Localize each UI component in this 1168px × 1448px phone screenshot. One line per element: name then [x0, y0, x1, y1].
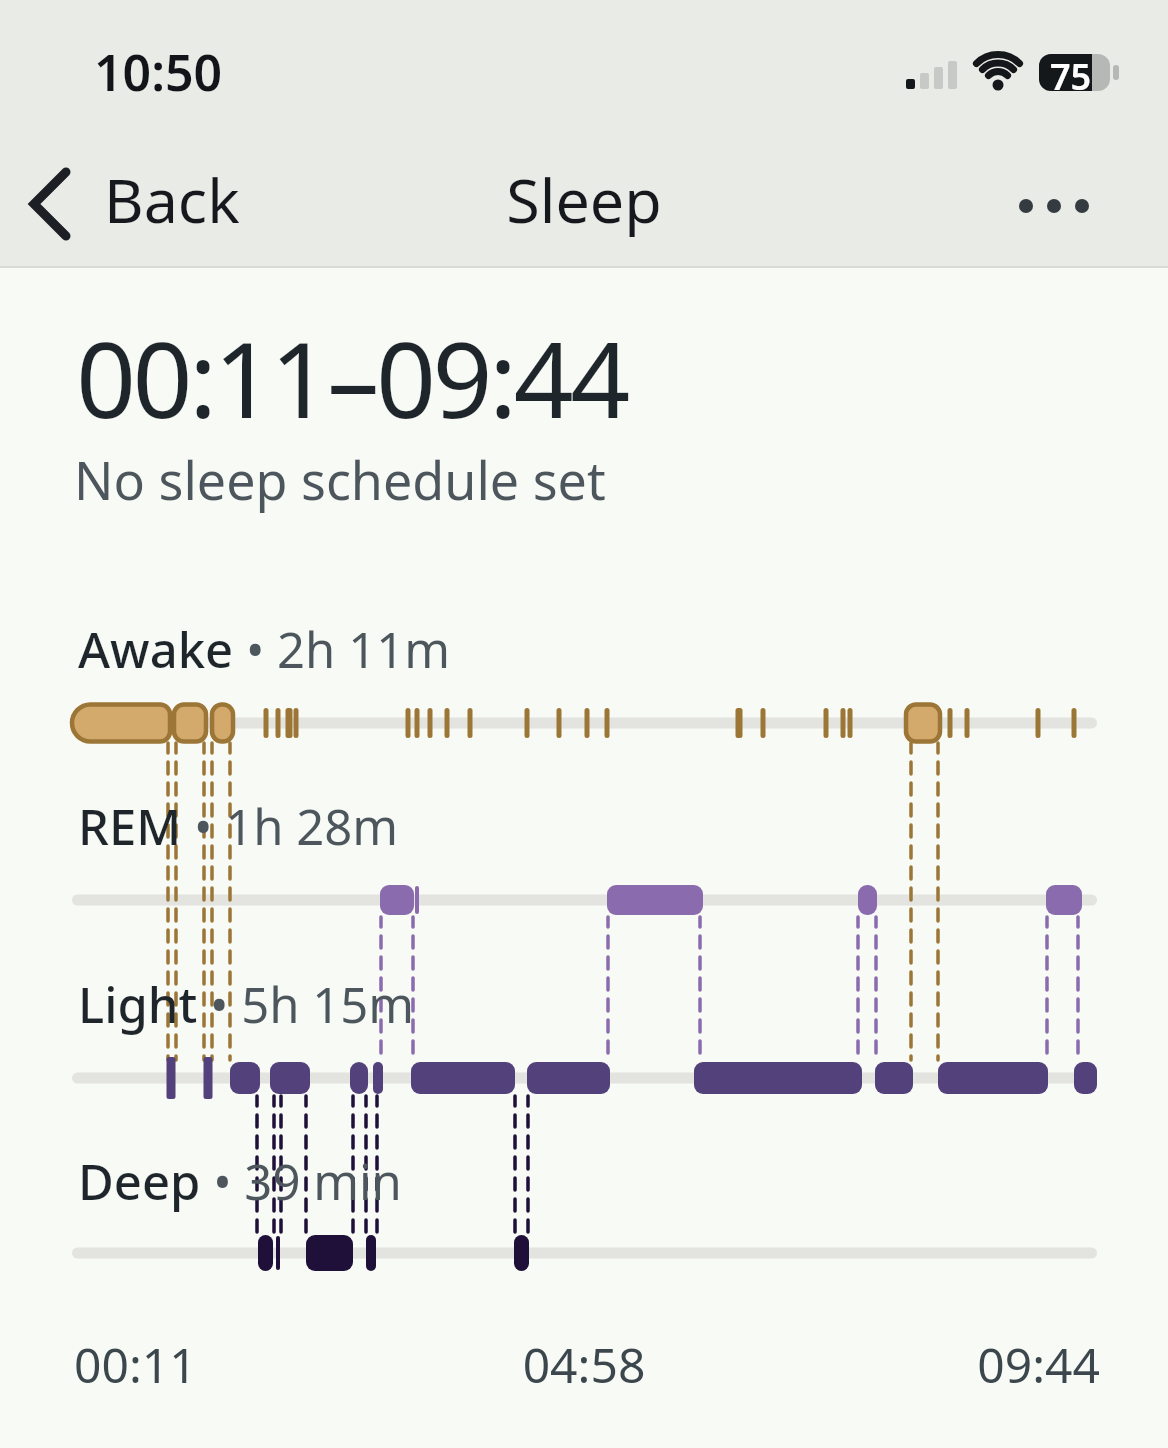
staticText: Deep • 39 min	[78, 1148, 402, 1215]
staticText: Light • 5h 15m	[78, 971, 415, 1038]
staticText: Back	[104, 158, 240, 241]
staticText: No sleep schedule set	[74, 444, 606, 515]
staticText: 04:58	[0, 1332, 1168, 1397]
staticText: 00:11	[74, 1332, 197, 1397]
staticText: REM • 1h 28m	[78, 793, 399, 860]
staticText: Sleep	[0, 158, 1168, 241]
staticText: 00:11–09:44	[76, 306, 627, 449]
staticText: 09:44	[0, 1332, 1100, 1397]
staticText: 10:50	[94, 38, 223, 106]
staticText: 75	[1050, 52, 1092, 101]
staticText: Awake • 2h 11m	[78, 616, 451, 683]
